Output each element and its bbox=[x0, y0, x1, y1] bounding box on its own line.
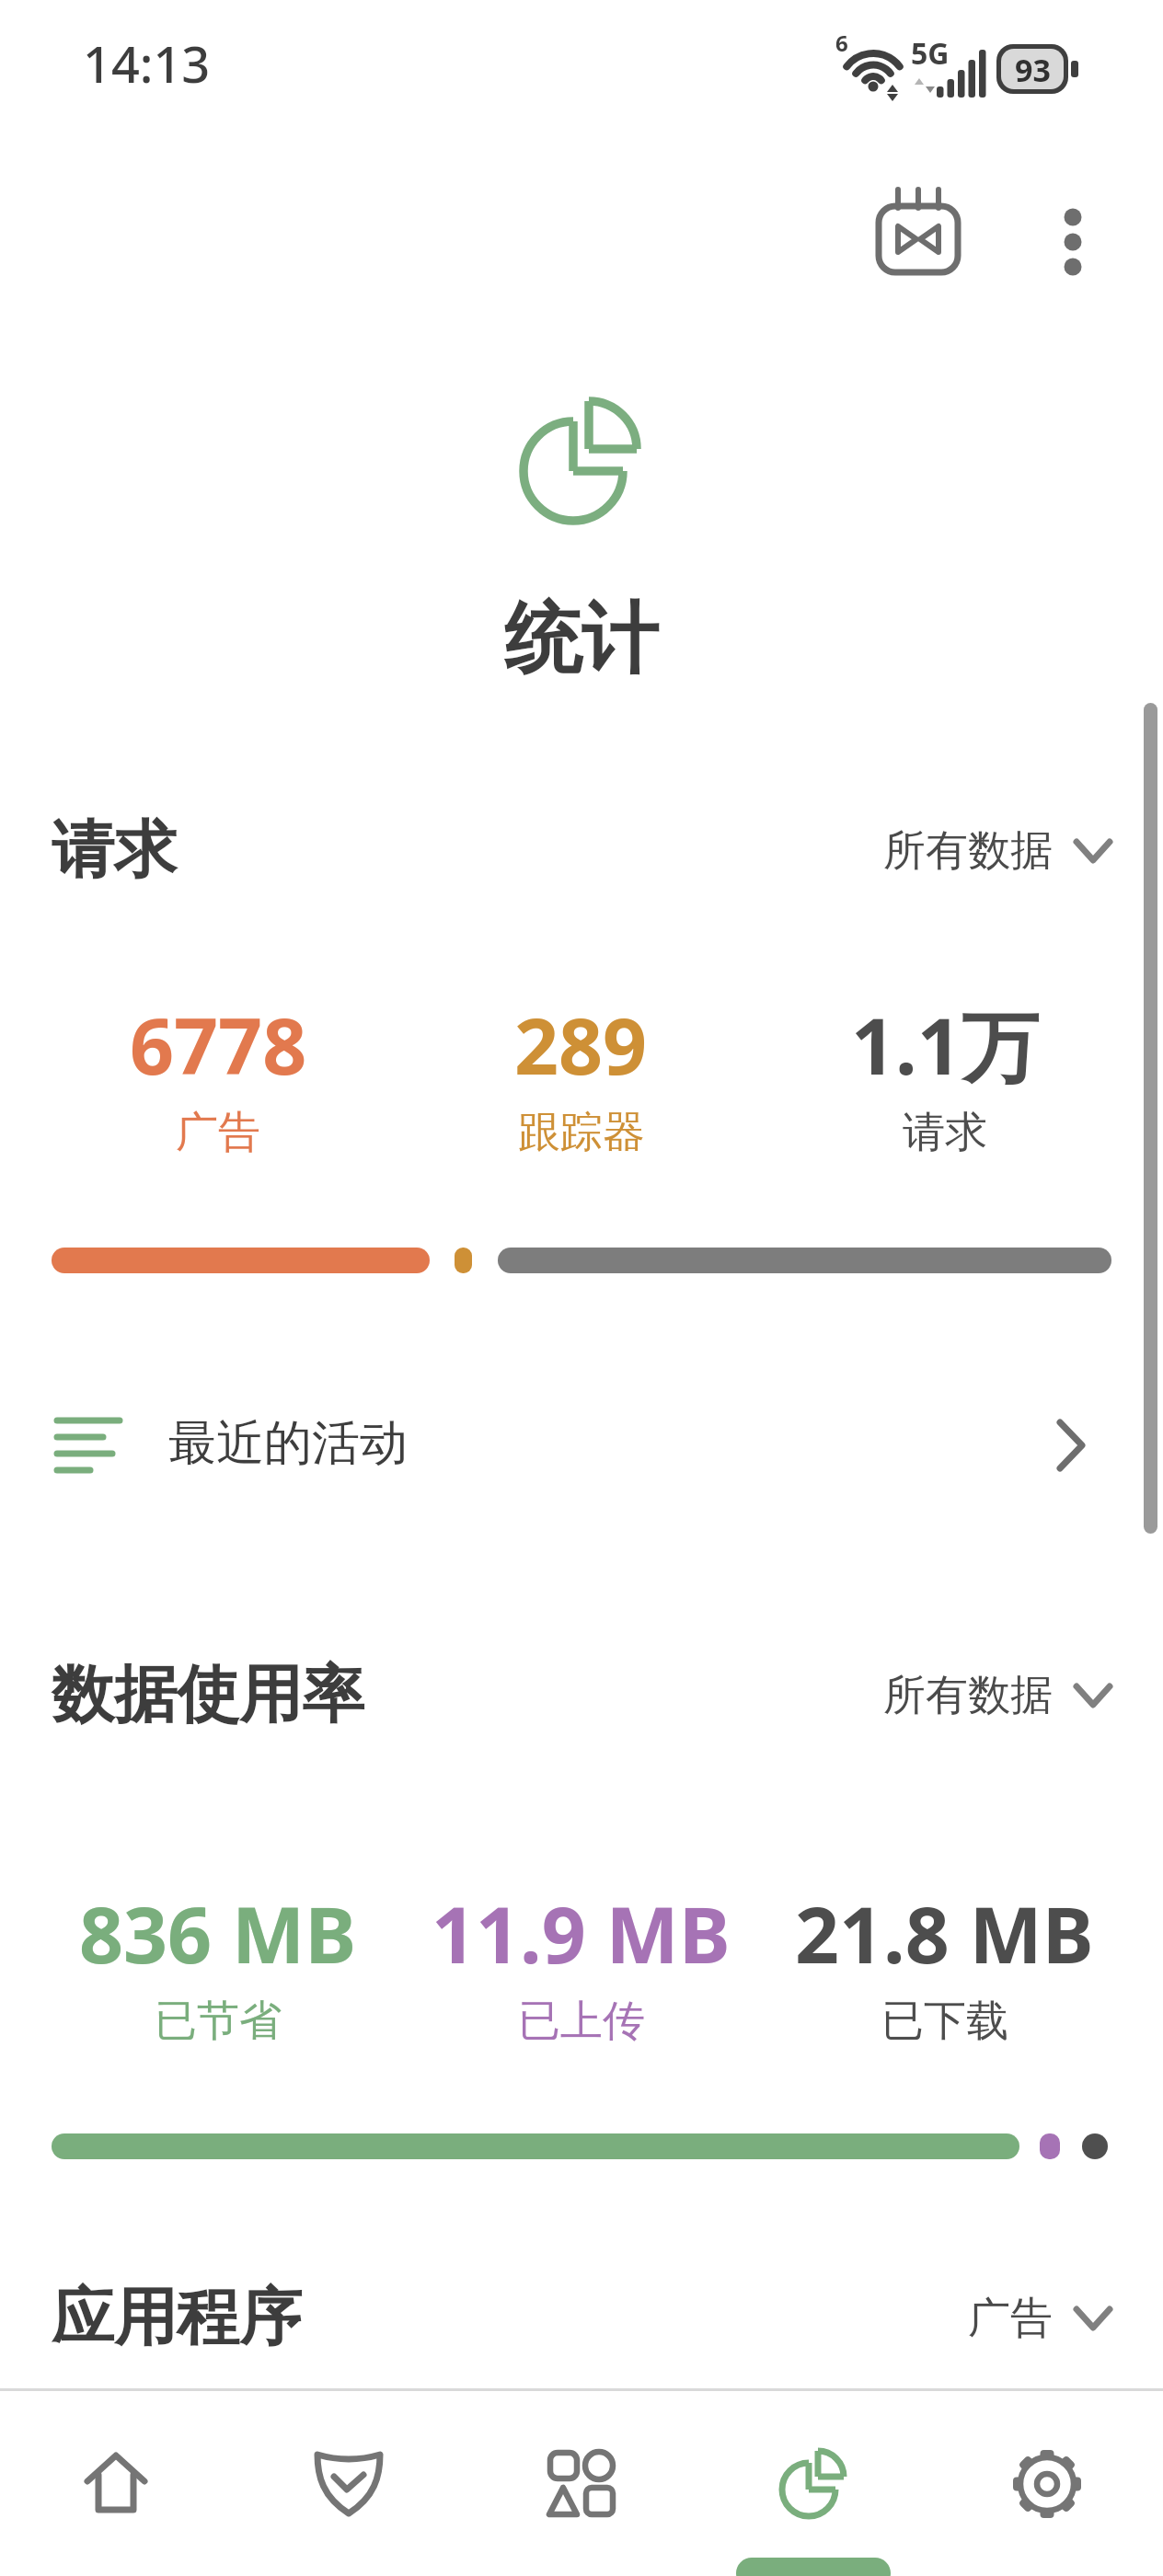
button[interactable] bbox=[865, 182, 972, 289]
staticText: 已下载 bbox=[881, 1995, 1008, 2048]
staticText: 跟踪器 bbox=[518, 1106, 645, 1159]
staticText: 289 bbox=[514, 992, 648, 1097]
staticText: 21.8 MB bbox=[795, 1880, 1094, 1985]
staticText: 请求 bbox=[52, 811, 177, 891]
button[interactable] bbox=[1038, 201, 1108, 283]
staticText: 836 MB bbox=[79, 1880, 357, 1985]
staticText: 数据使用率 bbox=[52, 1656, 364, 1735]
button[interactable]: 广告 bbox=[968, 2292, 1111, 2345]
button[interactable] bbox=[294, 2429, 404, 2539]
staticText: 广告 bbox=[968, 2292, 1053, 2345]
staticText: 应用程序 bbox=[52, 2279, 302, 2358]
button[interactable]: 所有数据 bbox=[883, 824, 1111, 878]
button[interactable] bbox=[759, 2429, 869, 2539]
staticText: 93 bbox=[1015, 49, 1051, 89]
staticText: 14:13 bbox=[83, 29, 211, 98]
button[interactable] bbox=[992, 2429, 1102, 2539]
staticText: 1.1万 bbox=[851, 992, 1039, 1098]
button[interactable] bbox=[526, 2429, 637, 2539]
staticText: 广告 bbox=[176, 1106, 260, 1159]
staticText: 统计 bbox=[504, 591, 659, 688]
staticText: 6778 bbox=[130, 992, 307, 1097]
staticText: 6 bbox=[835, 28, 848, 58]
staticText: 5G bbox=[911, 33, 950, 74]
staticText: 所有数据 bbox=[883, 824, 1053, 878]
button[interactable]: 所有数据 bbox=[883, 1669, 1111, 1722]
staticText: 11.9 MB bbox=[432, 1880, 731, 1985]
staticText: 已上传 bbox=[518, 1995, 645, 2048]
staticText: 请求 bbox=[903, 1106, 987, 1159]
button[interactable] bbox=[61, 2429, 171, 2539]
button[interactable]: 最近的活动 bbox=[0, 1380, 1163, 1509]
staticText: 最近的活动 bbox=[168, 1413, 408, 1474]
staticText: 已节省 bbox=[155, 1995, 282, 2048]
staticText: 所有数据 bbox=[883, 1669, 1053, 1722]
